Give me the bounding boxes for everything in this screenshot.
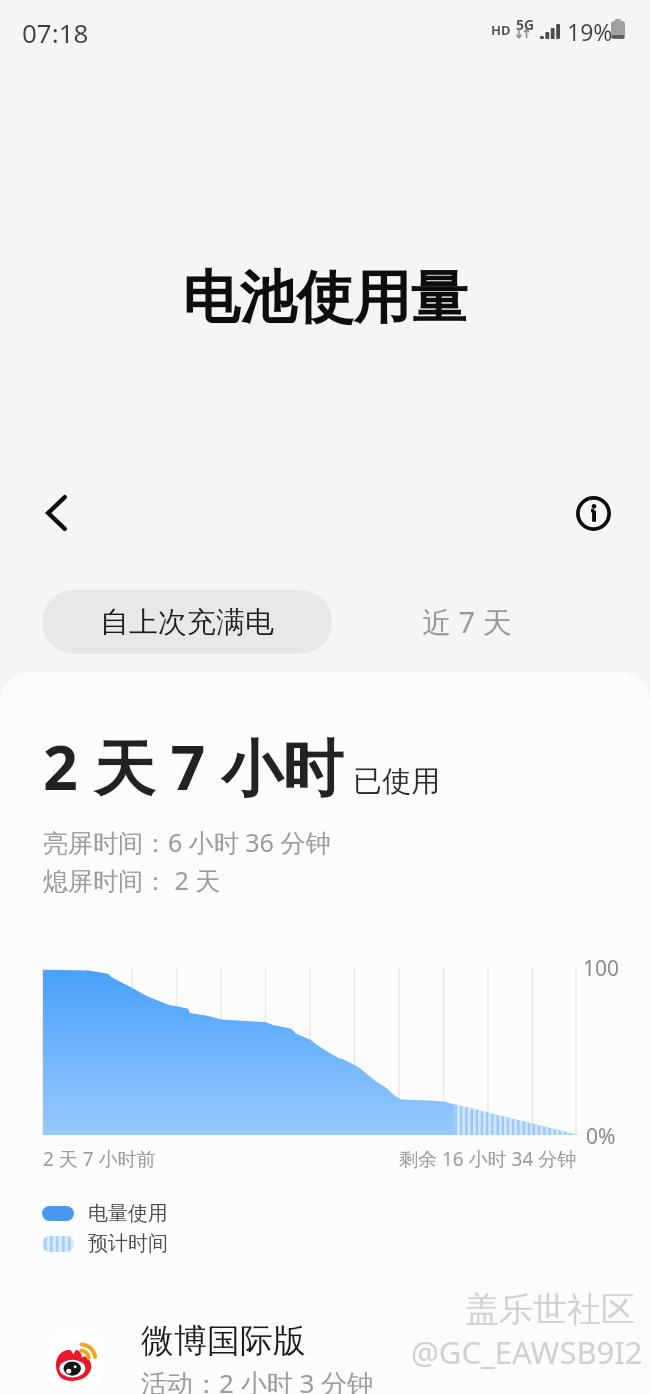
- button[interactable]: 自上次充满电: [42, 590, 332, 654]
- staticText: 2 天 7 小时: [43, 725, 344, 808]
- staticText: 19%: [567, 16, 613, 47]
- staticText: 微博国际版: [141, 1320, 306, 1362]
- staticText: 07:18: [22, 15, 89, 50]
- staticText: 活动：2 小时 3 分钟: [141, 1365, 374, 1394]
- staticText: 电池使用量: [0, 262, 650, 334]
- staticText: 5G: [516, 15, 535, 34]
- button[interactable]: Back: [22, 478, 90, 546]
- button[interactable]: Information: [558, 478, 626, 546]
- button[interactable]: 微博国际版: [0, 1314, 650, 1394]
- staticText: HD: [491, 21, 511, 39]
- staticText: @GC_EAWSB9I2: [411, 1331, 643, 1373]
- staticText: 已使用: [353, 763, 440, 800]
- staticText: 100: [583, 954, 620, 983]
- staticText: 熄屏时间： 2 天: [43, 863, 221, 897]
- staticText: 预计时间: [88, 1231, 168, 1256]
- button[interactable]: 近 7 天: [332, 590, 561, 654]
- staticText: 2 天 7 小时前: [43, 1146, 156, 1172]
- staticText: 亮屏时间：6 小时 36 分钟: [43, 825, 331, 859]
- staticText: 近 7 天: [422, 602, 512, 642]
- staticText: 自上次充满电: [100, 604, 274, 641]
- staticText: 电量使用: [88, 1201, 168, 1226]
- staticText: 0%: [586, 1122, 616, 1151]
- staticText: 剩余 16 小时 34 分钟: [399, 1146, 577, 1172]
- staticText: 盖乐世社区: [465, 1288, 635, 1331]
